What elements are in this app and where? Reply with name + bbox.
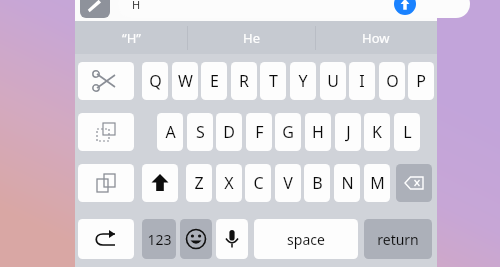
button[interactable]: Q xyxy=(142,62,168,100)
button[interactable]: Compose xyxy=(80,0,110,18)
button[interactable]: C xyxy=(245,164,271,202)
button[interactable]: Copy xyxy=(78,113,134,151)
button[interactable]: T xyxy=(260,62,286,100)
staticText: He xyxy=(243,29,260,47)
button[interactable]: V xyxy=(275,164,301,202)
button[interactable]: E xyxy=(201,62,227,100)
button[interactable]: G xyxy=(275,113,301,151)
staticText: F xyxy=(255,121,264,143)
button[interactable]: Send xyxy=(394,0,416,15)
staticText: B xyxy=(312,172,323,194)
button[interactable]: Backspace xyxy=(396,164,432,202)
button[interactable]: space xyxy=(254,219,358,259)
staticText: space xyxy=(287,230,325,249)
staticText: U xyxy=(327,70,339,92)
staticText: K xyxy=(372,121,382,143)
staticText: H xyxy=(312,121,324,143)
staticText: M xyxy=(370,172,385,194)
button[interactable]: S xyxy=(187,113,213,151)
staticText: C xyxy=(253,172,264,194)
staticText: Q xyxy=(149,70,162,92)
staticText: H xyxy=(132,0,141,12)
button[interactable]: A xyxy=(157,113,183,151)
staticText: P xyxy=(416,70,426,92)
staticText: A xyxy=(165,121,176,143)
staticText: S xyxy=(196,121,205,143)
button[interactable]: Emoji xyxy=(180,219,212,259)
button[interactable]: He xyxy=(191,21,311,54)
button[interactable]: How xyxy=(316,21,436,54)
staticText: G xyxy=(282,121,294,143)
button[interactable]: Paste xyxy=(78,164,134,202)
staticText: N xyxy=(341,172,354,194)
button[interactable]: L xyxy=(394,113,420,151)
button[interactable]: X xyxy=(216,164,242,202)
button[interactable]: 123 xyxy=(142,219,176,259)
button[interactable]: Undo xyxy=(78,219,134,259)
staticText: Y xyxy=(298,70,308,92)
button[interactable]: P xyxy=(408,62,434,100)
button[interactable]: Z xyxy=(186,164,212,202)
button[interactable]: Shift xyxy=(142,164,178,202)
button[interactable]: “H” xyxy=(71,21,191,54)
button[interactable]: W xyxy=(172,62,198,100)
staticText: 123 xyxy=(147,230,172,249)
staticText: I xyxy=(359,70,365,92)
staticText: How xyxy=(362,29,390,47)
button[interactable]: return xyxy=(364,219,432,259)
button[interactable]: M xyxy=(364,164,390,202)
button[interactable]: R xyxy=(231,62,257,100)
staticText: J xyxy=(346,121,351,143)
button[interactable]: H xyxy=(305,113,331,151)
staticText: W xyxy=(178,70,193,92)
staticText: T xyxy=(269,70,278,92)
staticText: Z xyxy=(194,172,204,194)
button[interactable]: Cut xyxy=(78,62,134,100)
staticText: O xyxy=(386,70,399,92)
button[interactable]: U xyxy=(320,62,346,100)
staticText: return xyxy=(377,230,419,249)
staticText: R xyxy=(239,70,249,92)
staticText: L xyxy=(403,121,412,143)
button[interactable]: D xyxy=(216,113,242,151)
staticText: E xyxy=(210,70,219,92)
button[interactable]: N xyxy=(334,164,360,202)
button[interactable]: Dictate xyxy=(216,219,248,259)
staticText: X xyxy=(224,172,234,194)
button[interactable]: H xyxy=(118,0,470,18)
staticText: “H” xyxy=(122,29,141,47)
button[interactable]: Y xyxy=(290,62,316,100)
button[interactable]: O xyxy=(379,62,405,100)
button[interactable]: J xyxy=(335,113,361,151)
button[interactable]: K xyxy=(364,113,390,151)
staticText: D xyxy=(223,121,235,143)
button[interactable]: F xyxy=(246,113,272,151)
button[interactable]: I xyxy=(349,62,375,100)
button[interactable]: B xyxy=(304,164,330,202)
staticText: V xyxy=(283,172,293,194)
